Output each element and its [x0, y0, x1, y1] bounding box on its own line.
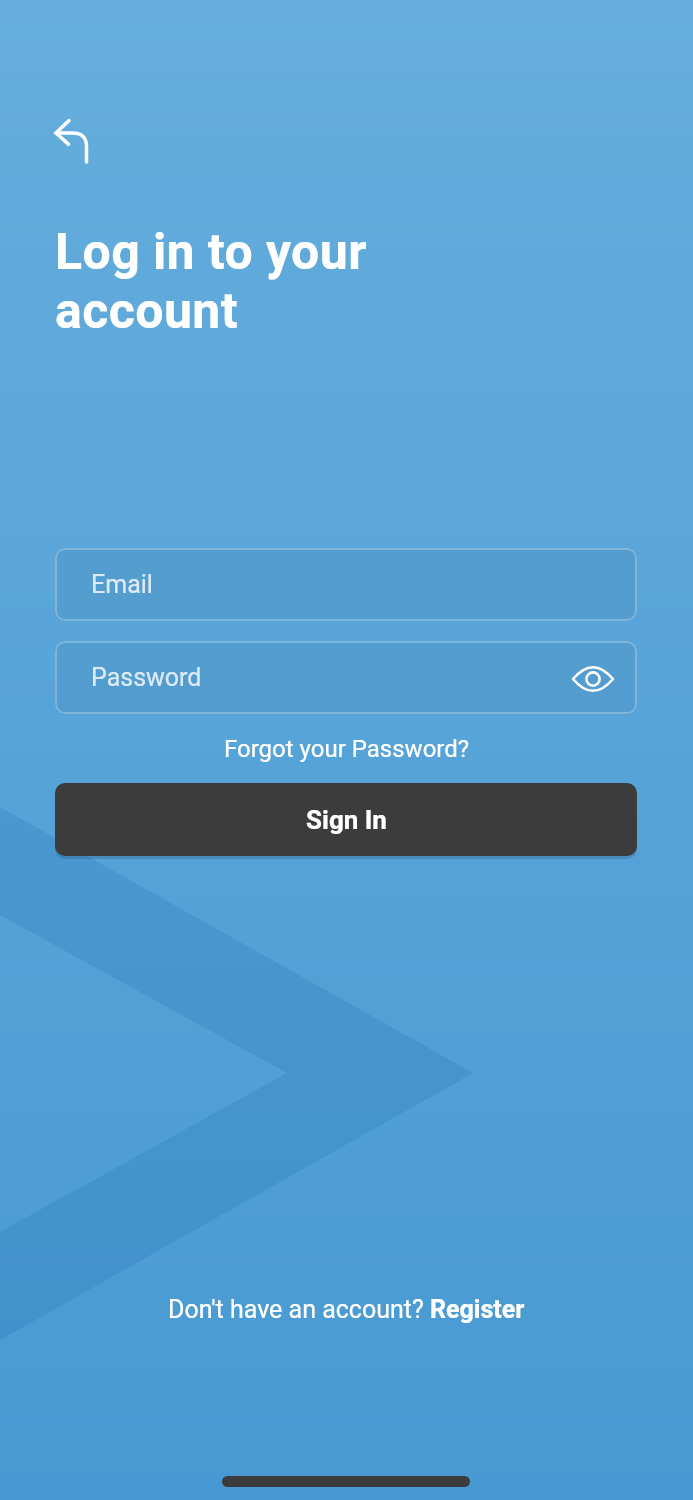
- button[interactable]: Sign In: [55, 783, 637, 856]
- staticText: Register: [430, 1295, 525, 1324]
- staticText: Sign In: [306, 805, 387, 835]
- staticText: Email: [91, 570, 153, 599]
- button[interactable]: Forgot your Password?: [214, 729, 480, 769]
- button[interactable]: [40, 105, 104, 169]
- staticText: Forgot your Password?: [224, 735, 470, 763]
- button[interactable]: Password: [55, 641, 637, 714]
- button[interactable]: Email: [55, 548, 637, 621]
- staticText: Password: [91, 663, 202, 692]
- staticText: Don't have an account?: [168, 1295, 430, 1324]
- button[interactable]: Register: [430, 1295, 525, 1324]
- button[interactable]: [565, 655, 621, 703]
- staticText: Log in to your account: [55, 223, 367, 341]
